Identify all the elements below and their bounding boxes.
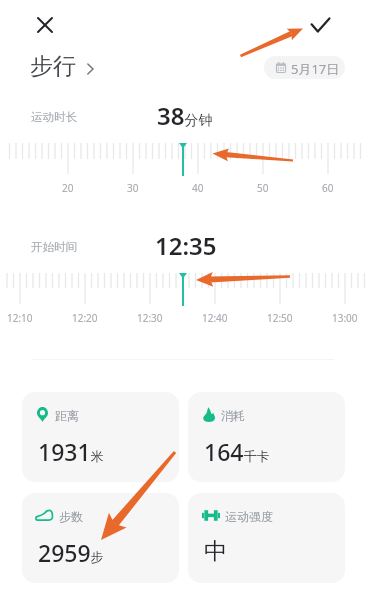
button[interactable]: 步数	[22, 493, 179, 583]
staticText: 运动时长	[31, 110, 77, 124]
staticText: 20	[62, 181, 74, 195]
button[interactable]: 5月17日	[264, 56, 345, 79]
staticText: 12:30	[137, 311, 163, 325]
staticText: 40	[192, 181, 204, 195]
staticText: 12:35	[155, 229, 217, 262]
button[interactable]: Adjust value	[0, 273, 368, 309]
button[interactable]: Confirm	[304, 9, 336, 41]
staticText: 50	[257, 181, 269, 195]
button[interactable]: 距离	[22, 392, 179, 482]
staticText: 步数	[59, 509, 83, 524]
staticText: 1931米	[38, 436, 104, 467]
staticText: 13:00	[332, 311, 358, 325]
button[interactable]: Adjust value	[0, 143, 368, 179]
staticText: 步行	[30, 52, 76, 81]
staticText: 开始时间	[31, 240, 77, 254]
staticText: 消耗	[221, 408, 245, 423]
button[interactable]: 消耗	[188, 392, 345, 482]
staticText: 12:10	[7, 311, 33, 325]
button[interactable]: Close	[29, 9, 61, 41]
staticText: 5月17日	[291, 60, 340, 78]
staticText: 30	[127, 181, 139, 195]
staticText: 12:40	[202, 311, 228, 325]
staticText: 60	[322, 181, 334, 195]
staticText: 中	[204, 537, 227, 566]
staticText: 38分钟	[157, 99, 213, 132]
staticText: 12:50	[267, 311, 293, 325]
staticText: 12:20	[72, 311, 98, 325]
staticText: 2959步	[38, 537, 104, 568]
staticText: 运动强度	[225, 509, 273, 524]
staticText: 164千卡	[204, 436, 270, 467]
button[interactable]: 运动强度	[188, 493, 345, 583]
staticText: 距离	[55, 408, 79, 423]
button[interactable]: 步行	[30, 52, 94, 81]
